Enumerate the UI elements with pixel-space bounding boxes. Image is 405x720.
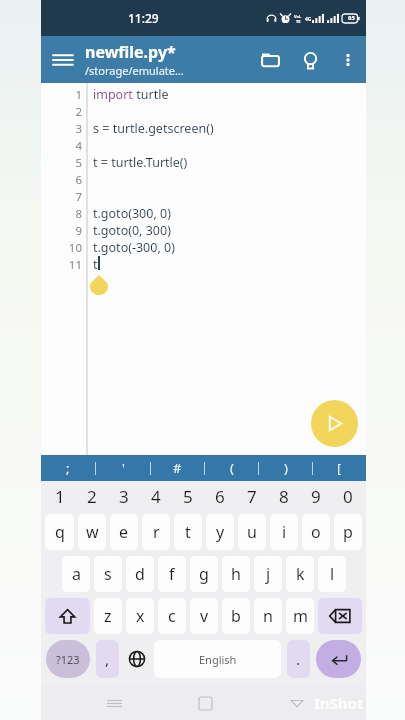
staticText: newfile.py* <box>85 41 176 63</box>
staticText: 3 <box>41 121 82 137</box>
button[interactable]: e <box>110 514 138 550</box>
button[interactable]: i <box>270 514 298 550</box>
button[interactable]: # <box>151 455 204 481</box>
button[interactable]: Backspace <box>318 598 362 634</box>
staticText: , <box>105 649 110 669</box>
staticText: 11:29 <box>128 10 159 26</box>
staticText: r <box>153 521 160 543</box>
button[interactable]: 8 <box>268 481 300 511</box>
button[interactable]: r <box>142 514 170 550</box>
staticText: e <box>119 521 129 543</box>
button[interactable]: d <box>126 556 154 592</box>
staticText: [ <box>337 459 342 477</box>
button[interactable]: v <box>190 598 218 634</box>
button[interactable]: s <box>94 556 122 592</box>
button[interactable]: ' <box>96 455 150 481</box>
button[interactable]: Open file <box>250 40 290 80</box>
button[interactable]: Open navigation drawer <box>41 38 85 82</box>
button[interactable]: Home <box>175 686 236 720</box>
staticText: ?123 <box>56 652 80 667</box>
staticText: 9 <box>41 223 82 239</box>
staticText: o <box>311 521 321 543</box>
button[interactable]: 3 <box>108 481 140 511</box>
button[interactable]: 9 <box>300 481 332 511</box>
staticText: 11 <box>41 257 82 273</box>
button[interactable]: Enter <box>316 640 361 678</box>
staticText: c <box>168 605 176 627</box>
button[interactable]: Change language <box>122 637 151 681</box>
button[interactable]: , <box>96 640 119 678</box>
staticText: ' <box>122 459 125 477</box>
button[interactable]: t <box>174 514 202 550</box>
button[interactable]: p <box>334 514 362 550</box>
button[interactable]: y <box>206 514 234 550</box>
button[interactable]: q <box>45 514 74 550</box>
staticText: a <box>72 563 81 585</box>
staticText: import <box>93 86 133 103</box>
button[interactable]: 2 <box>76 481 108 511</box>
button[interactable]: Recent apps <box>84 686 145 720</box>
button[interactable]: z <box>94 598 122 634</box>
staticText: b <box>231 605 241 627</box>
button[interactable]: Back <box>266 686 327 720</box>
staticText: l <box>330 563 335 585</box>
staticText: y <box>216 521 225 543</box>
button[interactable]: Hints <box>290 40 330 80</box>
staticText: p <box>343 521 353 543</box>
staticText: 8 <box>41 206 82 222</box>
button[interactable]: b <box>222 598 250 634</box>
button[interactable]: English <box>154 640 281 678</box>
staticText: t = turtle.Turtle() <box>93 154 188 171</box>
button[interactable]: ) <box>259 455 312 481</box>
button[interactable]: 1 <box>41 83 366 455</box>
button[interactable]: 1 <box>43 481 76 511</box>
staticText: 2 <box>87 485 97 508</box>
button[interactable]: ; <box>41 455 95 481</box>
staticText: q <box>55 521 65 543</box>
staticText: j <box>266 563 271 585</box>
staticText: 5 <box>183 485 193 508</box>
button[interactable]: 0 <box>332 481 364 511</box>
button[interactable]: x <box>126 598 154 634</box>
button[interactable]: 7 <box>236 481 268 511</box>
staticText: 10 <box>41 240 82 256</box>
staticText: s = turtle.getscreen() <box>93 120 214 137</box>
staticText: 0 <box>343 485 353 508</box>
staticText: 7 <box>41 189 82 205</box>
staticText: 1 <box>55 485 65 508</box>
button[interactable]: . <box>287 640 310 678</box>
button[interactable]: Run <box>311 400 358 447</box>
button[interactable]: c <box>158 598 186 634</box>
button[interactable]: f <box>158 556 186 592</box>
button[interactable]: g <box>190 556 218 592</box>
staticText: f <box>169 563 175 585</box>
button[interactable]: n <box>254 598 282 634</box>
button[interactable]: u <box>238 514 266 550</box>
button[interactable]: Shift <box>45 598 90 634</box>
staticText: m <box>293 605 308 627</box>
button[interactable]: 6 <box>204 481 236 511</box>
button[interactable]: [ <box>313 455 366 481</box>
button[interactable]: More options <box>330 42 366 78</box>
button[interactable]: a <box>62 556 90 592</box>
staticText: ( <box>230 459 234 477</box>
button[interactable]: h <box>222 556 250 592</box>
button[interactable]: 5 <box>172 481 204 511</box>
button[interactable]: ( <box>205 455 258 481</box>
staticText: 65 <box>348 14 355 22</box>
staticText: 4 <box>41 138 82 154</box>
staticText: TE <box>296 19 301 24</box>
button[interactable]: o <box>302 514 330 550</box>
button[interactable]: ?123 <box>46 640 90 678</box>
button[interactable]: l <box>318 556 346 592</box>
staticText: 1 <box>41 87 82 103</box>
button[interactable]: w <box>78 514 106 550</box>
staticText: s <box>104 563 112 585</box>
button[interactable]: j <box>254 556 282 592</box>
button[interactable]: m <box>286 598 314 634</box>
staticText: u <box>247 521 257 543</box>
button[interactable]: k <box>286 556 314 592</box>
staticText: 6 <box>41 172 82 188</box>
staticText: /storage/emulate… <box>85 63 184 78</box>
button[interactable]: 4 <box>140 481 172 511</box>
